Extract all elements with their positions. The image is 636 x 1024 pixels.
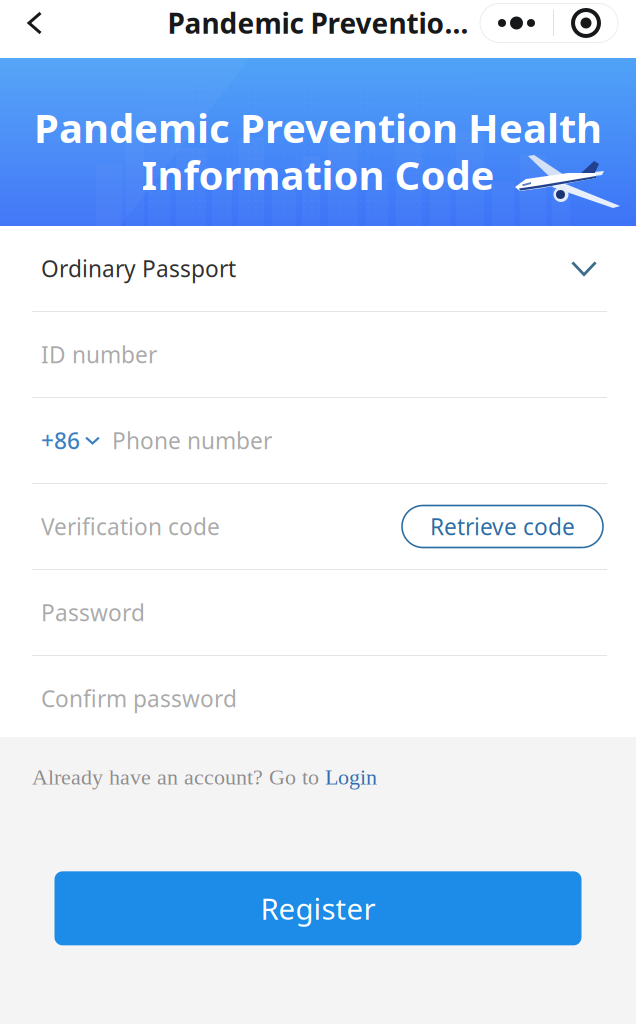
staticText: ID number — [41, 339, 157, 369]
staticText: Information Code — [141, 148, 494, 201]
staticText: Verification code — [41, 511, 220, 541]
button[interactable]: Retrieve code — [402, 505, 603, 547]
button[interactable]: Register — [54, 871, 581, 945]
staticText: Pandemic Preventio... — [167, 4, 468, 42]
staticText: Pandemic Prevention Health — [34, 101, 602, 154]
staticText: Already have an account? Go to — [32, 765, 325, 789]
staticText: Confirm password — [41, 683, 237, 713]
staticText: Register — [260, 889, 375, 928]
staticText: Ordinary Passport — [41, 253, 236, 283]
button[interactable]: Login — [325, 765, 377, 789]
button[interactable]: More options — [480, 3, 618, 42]
staticText: Password — [41, 597, 145, 627]
staticText: +86 — [41, 425, 80, 455]
button[interactable]: Ordinary Passport — [32, 226, 607, 312]
button[interactable]: +86 — [41, 425, 102, 455]
staticText: Phone number — [112, 425, 272, 455]
staticText: Retrieve code — [430, 511, 575, 541]
button[interactable]: Back — [11, 0, 59, 46]
staticText: Login — [325, 765, 377, 789]
